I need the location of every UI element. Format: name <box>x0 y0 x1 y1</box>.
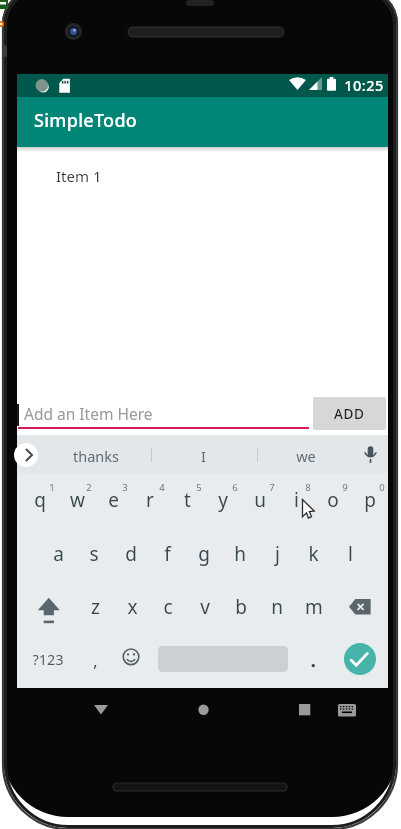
staticText: 7 <box>269 481 275 494</box>
staticText: ADD <box>334 405 365 423</box>
staticText: r <box>146 487 154 513</box>
staticText: 0 <box>379 481 385 494</box>
staticText: a <box>53 541 64 567</box>
staticText: e <box>108 487 119 513</box>
button[interactable] <box>17 97 388 147</box>
staticText: 8 <box>305 481 311 494</box>
staticText: q <box>34 487 46 513</box>
staticText: c <box>163 594 173 620</box>
staticText: ?123 <box>32 649 64 669</box>
button[interactable]: ADD <box>313 397 386 430</box>
staticText: y <box>218 487 228 513</box>
staticText: j <box>275 541 280 567</box>
staticText: 3 <box>122 481 128 494</box>
staticText: w <box>70 487 85 513</box>
staticText: I <box>201 446 206 466</box>
staticText: m <box>305 594 323 620</box>
staticText: o <box>327 487 339 513</box>
staticText: t <box>184 487 191 513</box>
button[interactable] <box>80 690 122 730</box>
staticText: 2 <box>86 481 92 494</box>
staticText: Item 1 <box>56 166 102 186</box>
staticText: z <box>91 594 100 620</box>
staticText: v <box>200 594 210 620</box>
staticText: b <box>235 594 247 620</box>
button[interactable] <box>182 690 224 730</box>
staticText: Add an Item Here <box>24 403 153 424</box>
staticText: u <box>254 487 266 513</box>
staticText: g <box>198 541 210 567</box>
staticText: 9 <box>342 481 348 494</box>
staticText: k <box>308 541 319 567</box>
staticText: x <box>127 594 138 620</box>
staticText: 1 <box>49 481 55 494</box>
staticText: s <box>89 541 99 567</box>
button[interactable] <box>344 643 376 675</box>
staticText: p <box>364 487 376 513</box>
staticText: d <box>125 541 137 567</box>
staticText: 6 <box>232 481 238 494</box>
staticText: l <box>348 541 353 567</box>
staticText: f <box>164 541 171 567</box>
button[interactable] <box>14 443 38 467</box>
staticText: we <box>296 446 316 466</box>
staticText: thanks <box>73 446 119 466</box>
staticText: 5 <box>196 481 202 494</box>
staticText: 4 <box>159 481 165 494</box>
staticText: i <box>294 487 299 513</box>
staticText: SimpleTodo <box>34 108 138 133</box>
staticText: , <box>93 650 98 672</box>
staticText: h <box>234 541 246 567</box>
button[interactable] <box>278 690 320 730</box>
staticText: n <box>271 594 283 620</box>
staticText: 10:25 <box>344 75 384 95</box>
